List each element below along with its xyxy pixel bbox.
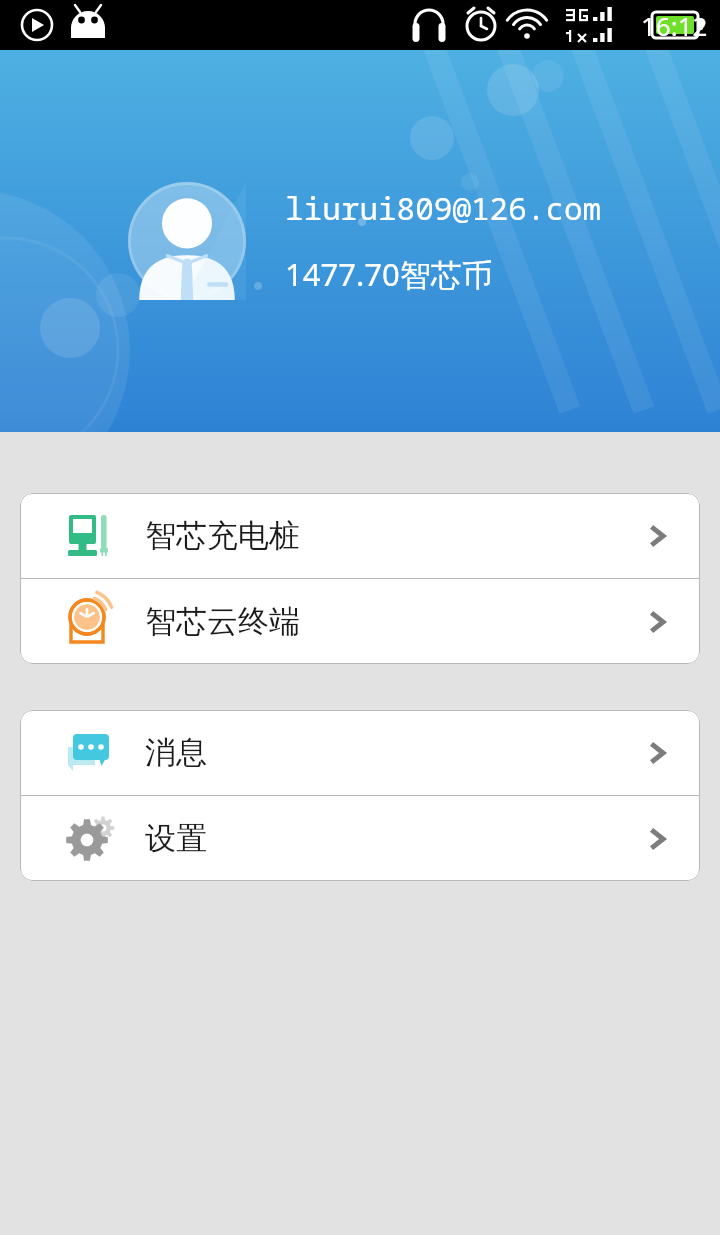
button[interactable]: 消息 [20,710,700,795]
staticText: 设置 [145,819,207,858]
other: Open 设置 [640,822,674,856]
staticText: 16:12 [641,8,708,43]
other: Open 智芯云终端 [640,605,674,639]
staticText: liurui809@126.com [285,187,602,229]
staticText: 智芯云终端 [145,602,300,641]
button[interactable]: 智芯充电桩 [20,493,700,578]
staticText: 智芯充电桩 [145,516,300,555]
other: Open 智芯充电桩 [640,519,674,553]
staticText: 消息 [145,733,207,772]
other: Open 消息 [640,736,674,770]
button[interactable]: 设置 [20,796,700,881]
staticText: 1477.70智芯币 [285,253,493,295]
button[interactable]: 智芯云终端 [20,579,700,664]
